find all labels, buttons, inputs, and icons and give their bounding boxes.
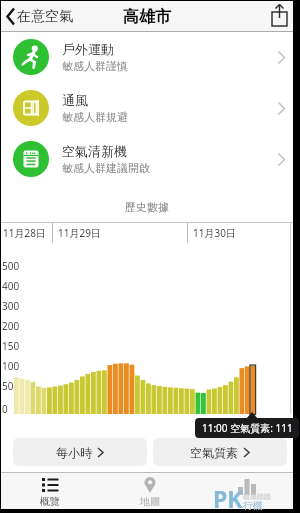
staticText: 100	[2, 359, 20, 373]
staticText: 敏感人群謹慎	[62, 59, 128, 73]
button[interactable]: 每小時	[13, 438, 147, 466]
button[interactable]: 概覽	[21, 473, 79, 509]
staticText: 地圖	[140, 495, 160, 508]
staticText: 敏感人群建議開啟	[62, 161, 150, 175]
staticText: 歷史數據	[125, 200, 169, 214]
staticText: 模擬踏踏	[243, 492, 271, 501]
staticText: 概覽	[40, 495, 60, 508]
staticText: 400	[2, 279, 20, 293]
button[interactable]	[266, 1, 293, 32]
staticText: 空氣質素	[190, 445, 238, 460]
staticText: 300	[2, 299, 20, 313]
button[interactable]: 空氣清新機	[1, 134, 293, 185]
button[interactable]: 戶外運動	[1, 32, 293, 83]
staticText: 11月28日	[3, 226, 46, 240]
staticText: 11月29日	[58, 226, 101, 240]
button[interactable]: 地圖	[121, 473, 179, 509]
staticText: PK	[213, 483, 243, 513]
staticText: 通風	[62, 92, 88, 108]
staticText: 50	[2, 379, 14, 393]
staticText: 行機	[243, 499, 263, 512]
staticText: 高雄市	[123, 7, 171, 27]
staticText: 戶外運動	[62, 41, 114, 57]
button[interactable]: 空氣質素	[153, 438, 287, 466]
staticText: 11:00 空氣質素: 111	[202, 421, 293, 435]
button[interactable]: 在意空氣	[1, 1, 87, 32]
staticText: 每小時	[56, 445, 92, 460]
button[interactable]: 通風	[1, 83, 293, 134]
staticText: 150	[2, 339, 20, 353]
staticText: 200	[2, 319, 20, 333]
staticText: 敏感人群規避	[62, 110, 128, 124]
staticText: 500	[2, 259, 20, 273]
staticText: 11月30日	[193, 226, 236, 240]
staticText: 0	[2, 402, 8, 416]
staticText: 空氣清新機	[62, 143, 127, 159]
staticText: 在意空氣	[17, 8, 73, 26]
